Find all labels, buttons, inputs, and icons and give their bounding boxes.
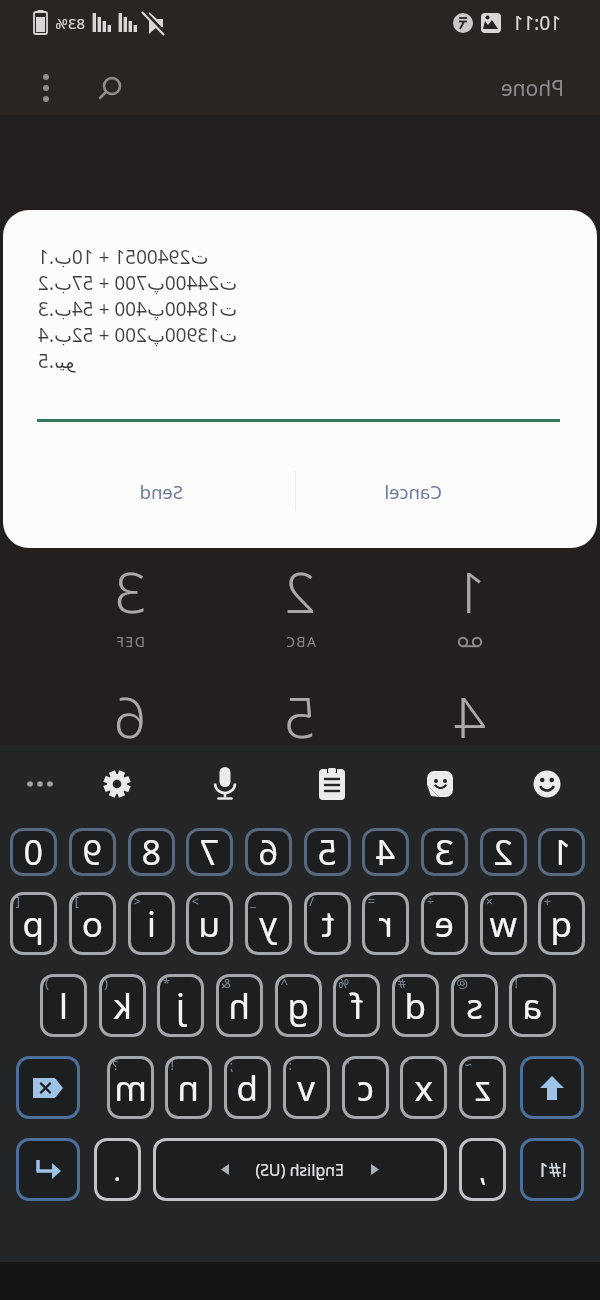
button[interactable]: i — [128, 892, 175, 955]
staticText: 10:11 — [512, 10, 561, 36]
button[interactable]: s — [451, 974, 498, 1037]
button[interactable]: 0 — [10, 828, 57, 876]
button[interactable] — [102, 769, 132, 799]
button[interactable]: z — [459, 1056, 506, 1119]
button[interactable]: u — [186, 892, 233, 955]
staticText: p — [22, 900, 44, 948]
button[interactable]: 8 — [128, 828, 175, 876]
button[interactable] — [16, 1056, 80, 1119]
button[interactable]: 6 — [245, 828, 292, 876]
staticText: * — [162, 974, 170, 992]
staticText: k — [113, 982, 132, 1030]
button[interactable]: b — [224, 1056, 271, 1119]
staticText: 8 — [141, 829, 161, 875]
staticText: m — [114, 1064, 147, 1112]
staticText: 83% — [55, 13, 85, 33]
staticText: ‭ت18400پ400 + 54ب.3‬ — [38, 296, 238, 322]
staticText: ~ — [464, 1056, 472, 1074]
button[interactable]: t — [304, 892, 351, 955]
button[interactable]: l — [40, 974, 87, 1037]
button[interactable]: 3 — [421, 828, 468, 876]
staticText: a — [522, 982, 542, 1030]
button[interactable]: k — [99, 974, 146, 1037]
button[interactable]: 7 — [186, 828, 233, 876]
button[interactable] — [22, 60, 70, 116]
button[interactable]: a — [509, 974, 556, 1037]
staticText: u — [198, 900, 220, 948]
button[interactable] — [16, 1138, 80, 1201]
staticText: Send — [139, 479, 183, 504]
button[interactable]: English (US) — [153, 1138, 447, 1201]
staticText: j — [175, 982, 185, 1030]
staticText: _ — [250, 892, 256, 910]
staticText: [ — [15, 892, 20, 910]
staticText: DEF — [115, 632, 145, 651]
button[interactable] — [520, 1056, 584, 1119]
button[interactable] — [82, 60, 138, 116]
staticText: 3 — [114, 553, 146, 629]
staticText: ‭ت13900پ200 + 52ب.4‬ — [38, 322, 238, 348]
button[interactable] — [318, 767, 346, 801]
staticText: > — [191, 892, 199, 910]
button[interactable]: e — [421, 892, 468, 955]
button[interactable]: d — [392, 974, 439, 1037]
staticText: : — [288, 1056, 292, 1074]
staticText: b — [236, 1064, 258, 1112]
button[interactable] — [425, 769, 455, 799]
button[interactable] — [24, 779, 54, 789]
button[interactable]: v — [283, 1056, 330, 1119]
staticText: e — [434, 900, 454, 948]
staticText: n — [177, 1064, 199, 1112]
staticText: 1 — [551, 829, 571, 875]
button[interactable]: Send — [41, 461, 281, 521]
button[interactable]: 4 — [362, 828, 409, 876]
button[interactable]: m — [107, 1056, 154, 1119]
button[interactable]: , — [459, 1138, 506, 1201]
button[interactable]: x — [400, 1056, 447, 1119]
staticText: 6 — [258, 829, 278, 875]
button[interactable]: 9 — [69, 828, 116, 876]
button[interactable]: w — [480, 892, 527, 955]
staticText: Cancel — [384, 479, 442, 504]
staticText: Phone — [500, 74, 564, 103]
button[interactable]: Cancel — [293, 461, 533, 521]
button[interactable] — [212, 767, 238, 803]
button[interactable]: !#1 — [520, 1138, 584, 1201]
staticText: r — [378, 900, 393, 948]
staticText: + — [543, 892, 551, 910]
button[interactable]: f — [333, 974, 380, 1037]
button[interactable]: 5 — [304, 828, 351, 876]
button[interactable]: q — [538, 892, 585, 955]
button[interactable]: 2 — [480, 828, 527, 876]
staticText: y — [259, 900, 277, 948]
button[interactable]: 1 — [538, 828, 585, 876]
button[interactable]: . — [94, 1138, 141, 1201]
staticText: d — [404, 982, 426, 1030]
staticText: 2 — [493, 829, 513, 875]
button[interactable]: g — [275, 974, 322, 1037]
staticText: 2 — [284, 553, 316, 629]
staticText: ABC — [284, 632, 316, 651]
staticText: ; — [229, 1056, 233, 1074]
button[interactable]: n — [165, 1056, 212, 1119]
staticText: h — [228, 982, 250, 1030]
staticText: 3 — [434, 829, 454, 875]
staticText: v — [297, 1064, 315, 1112]
button[interactable]: j — [157, 974, 204, 1037]
button[interactable]: h — [216, 974, 263, 1037]
button[interactable]: c — [342, 1056, 389, 1119]
staticText: q — [550, 900, 572, 948]
staticText: , — [478, 1151, 486, 1189]
staticText: 7 — [199, 829, 219, 875]
button[interactable]: y — [245, 892, 292, 955]
staticText: c — [357, 1064, 374, 1112]
button[interactable] — [532, 769, 562, 799]
button[interactable]: r — [362, 892, 409, 955]
staticText: English (US) — [255, 1159, 344, 1181]
staticText: = — [367, 892, 375, 910]
staticText: ^ — [280, 974, 288, 992]
button[interactable]: p — [10, 892, 57, 955]
staticText: 4 — [375, 829, 395, 875]
button[interactable]: o — [69, 892, 116, 955]
staticText: x — [414, 1064, 433, 1112]
